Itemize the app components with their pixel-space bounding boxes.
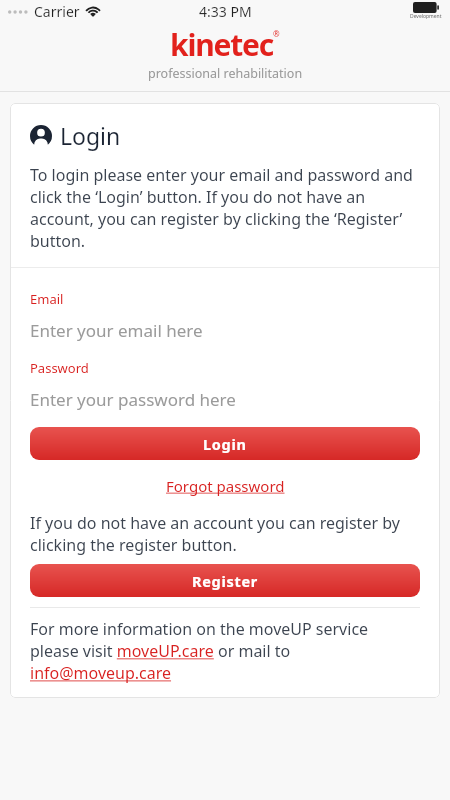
button[interactable]: Enter your password here	[30, 386, 420, 412]
staticText: Login	[203, 434, 247, 454]
other: Account	[30, 125, 52, 147]
staticText: 4:33 PM	[199, 2, 252, 21]
button[interactable]: Enter your email here	[30, 317, 420, 343]
staticText: Login	[60, 120, 121, 151]
staticText: Enter your email here	[30, 319, 203, 342]
staticText: Carrier	[34, 2, 80, 21]
staticText: ®	[273, 28, 280, 39]
staticText: Forgot password	[166, 476, 285, 496]
button[interactable]: Register	[30, 564, 420, 597]
staticText: To login please enter your email and pas…	[30, 164, 420, 252]
staticText: Email	[30, 290, 64, 308]
staticText: kinetec	[170, 24, 273, 65]
staticText: Register	[192, 571, 258, 591]
staticText: professional rehabilitation	[148, 65, 303, 82]
staticText: Enter your password here	[30, 388, 236, 411]
button[interactable]: Forgot password	[30, 476, 420, 496]
button[interactable]: Login	[30, 427, 420, 460]
staticText: Development	[410, 13, 442, 20]
button[interactable]: For more information on the moveUP servi…	[30, 618, 420, 684]
staticText: If you do not have an account you can re…	[30, 512, 420, 556]
staticText: Password	[30, 359, 89, 377]
